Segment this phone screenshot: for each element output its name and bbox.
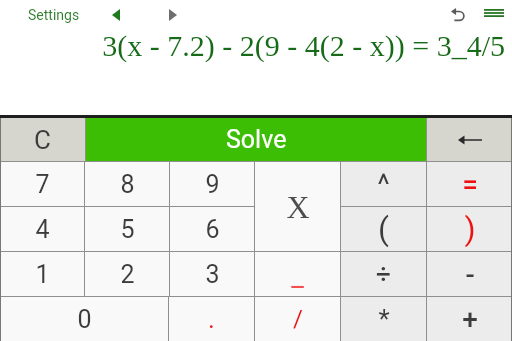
button[interactable]: Settings [22,1,86,29]
staticText: 6 [205,215,220,244]
staticText: 0 [77,305,92,334]
button[interactable]: 0 [0,297,168,341]
staticText: _ [291,260,304,293]
staticText: ^ [377,167,390,202]
staticText: / [293,305,303,333]
button[interactable] [106,3,126,27]
staticText: = [462,168,478,201]
button[interactable]: 6 [170,207,254,251]
button[interactable]: * [341,297,426,341]
staticText: C [34,125,51,155]
staticText: Solve [226,125,287,154]
staticText: * [378,304,390,334]
staticText: 3 [205,260,220,289]
button[interactable]: 3 [170,252,254,296]
button[interactable]: 7 [0,162,84,206]
staticText: 7 [35,170,50,199]
button[interactable] [478,3,510,24]
button[interactable]: ( [341,207,426,251]
staticText: 9 [205,170,220,199]
staticText: Settings [28,7,80,23]
button[interactable]: . [169,297,254,341]
staticText: 4 [35,215,50,244]
button[interactable]: - [427,252,512,296]
button[interactable] [445,2,471,27]
staticText: 1 [35,260,50,289]
staticText: 3(x - 7.2) - 2(9 - 4(2 - x)) = 3_4/5 [0,29,505,62]
staticText: X [286,189,310,224]
staticText: ( [378,210,389,248]
staticText: + [462,303,478,336]
button[interactable] [427,118,512,161]
button[interactable]: 4 [0,207,84,251]
button[interactable] [163,3,183,27]
button[interactable]: = [427,162,512,206]
staticText: - [465,258,475,291]
button[interactable]: / [255,297,340,341]
button[interactable]: 1 [0,252,84,296]
button[interactable]: ) [427,207,512,251]
button[interactable]: 2 [85,252,169,296]
staticText: 2 [120,260,135,289]
button[interactable]: _ [255,252,340,296]
staticText: 8 [120,170,135,199]
button[interactable]: C [0,118,85,161]
button[interactable]: ^ [341,162,426,206]
button[interactable]: X [255,162,340,251]
button[interactable]: + [427,297,512,341]
button[interactable]: Solve [86,118,426,161]
staticText: . [208,304,215,334]
staticText: ) [464,210,476,248]
button[interactable]: 8 [85,162,169,206]
staticText: 5 [120,215,135,244]
staticText: ÷ [376,259,391,289]
button[interactable]: 9 [170,162,254,206]
button[interactable]: ÷ [341,252,426,296]
button[interactable]: 5 [85,207,169,251]
